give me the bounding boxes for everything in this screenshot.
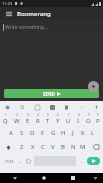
button[interactable]: Shift bbox=[0, 140, 16, 154]
staticText: D bbox=[30, 129, 35, 137]
staticText: N bbox=[71, 143, 76, 151]
staticText: Q bbox=[3, 117, 8, 125]
button[interactable]: V bbox=[48, 140, 58, 154]
staticText: F bbox=[41, 129, 45, 137]
button[interactable]: 1 bbox=[0, 112, 11, 126]
staticText: A bbox=[9, 129, 13, 137]
button[interactable]: Write something... bbox=[0, 20, 103, 34]
staticText: ?123 bbox=[5, 159, 14, 164]
button[interactable]: Hide keyboard bbox=[87, 173, 103, 183]
staticText: , bbox=[19, 158, 21, 165]
button[interactable]: Clipboard bbox=[62, 103, 70, 111]
staticText: E bbox=[26, 117, 30, 125]
staticText: J bbox=[72, 129, 74, 137]
button[interactable]: X bbox=[27, 140, 38, 154]
staticText: 1 bbox=[5, 113, 7, 117]
staticText: 11:23 bbox=[2, 1, 13, 6]
staticText: W bbox=[14, 117, 20, 125]
button[interactable]: Voice input bbox=[92, 103, 100, 111]
button[interactable]: C bbox=[38, 140, 48, 154]
button[interactable]: N bbox=[68, 140, 78, 154]
button[interactable]: Recent apps bbox=[58, 173, 87, 183]
button[interactable]: D bbox=[27, 126, 38, 140]
staticText: S bbox=[20, 129, 24, 137]
staticText: I bbox=[77, 117, 80, 125]
button[interactable]: L bbox=[88, 126, 98, 140]
staticText: 3 bbox=[27, 113, 29, 117]
staticText: M bbox=[80, 143, 86, 151]
button[interactable]: Comma bbox=[16, 156, 24, 166]
button[interactable]: F bbox=[38, 126, 48, 140]
button[interactable]: 4 bbox=[33, 112, 43, 126]
staticText: U bbox=[66, 117, 71, 125]
button[interactable]: G bbox=[48, 126, 58, 140]
staticText: 6 bbox=[57, 113, 59, 117]
button[interactable]: ?123 bbox=[2, 156, 16, 166]
staticText: P bbox=[96, 117, 100, 125]
staticText: 0 bbox=[97, 113, 99, 117]
staticText: Z bbox=[20, 143, 24, 151]
staticText: C bbox=[41, 143, 45, 151]
staticText: L bbox=[91, 129, 95, 137]
staticText: G bbox=[51, 129, 56, 137]
button[interactable]: 2 bbox=[11, 112, 22, 126]
button[interactable]: 5 bbox=[43, 112, 53, 126]
button[interactable]: More options bbox=[77, 103, 85, 111]
staticText: 8 bbox=[78, 113, 80, 117]
button[interactable]: Back bbox=[0, 173, 29, 183]
staticText: B bbox=[61, 143, 65, 151]
staticText: H bbox=[61, 129, 66, 137]
button[interactable]: H bbox=[58, 126, 68, 140]
staticText: 7 bbox=[68, 113, 70, 117]
button[interactable]: Search bbox=[18, 103, 26, 111]
staticText: 9 bbox=[88, 113, 90, 117]
staticText: . bbox=[81, 158, 83, 165]
staticText: X bbox=[31, 143, 35, 151]
button[interactable]: 6 bbox=[53, 112, 63, 126]
button[interactable]: 8 bbox=[73, 112, 83, 126]
button[interactable]: SEND bbox=[4, 89, 99, 98]
staticText: O bbox=[86, 117, 91, 125]
button[interactable]: Add bbox=[88, 81, 99, 92]
button[interactable]: 0 bbox=[93, 112, 103, 126]
staticText: SEND bbox=[43, 91, 55, 97]
button[interactable]: Stickers bbox=[33, 103, 41, 111]
button[interactable]: Period bbox=[77, 156, 86, 166]
button[interactable]: Open navigation menu bbox=[4, 9, 13, 18]
staticText: 2 bbox=[16, 113, 18, 117]
button[interactable]: Z bbox=[16, 140, 27, 154]
button[interactable]: Home bbox=[29, 173, 58, 183]
staticText: T bbox=[46, 117, 50, 125]
button[interactable]: M bbox=[78, 140, 88, 154]
button[interactable]: B bbox=[58, 140, 68, 154]
staticText: Y bbox=[56, 117, 60, 125]
staticText: V bbox=[51, 143, 55, 151]
button[interactable]: K bbox=[78, 126, 88, 140]
button[interactable]: A bbox=[5, 126, 16, 140]
staticText: Write something... bbox=[5, 24, 49, 31]
button[interactable]: 9 bbox=[83, 112, 93, 126]
button[interactable]: 7 bbox=[63, 112, 73, 126]
button[interactable]: Delete bbox=[88, 140, 103, 154]
staticText: 4 bbox=[37, 113, 39, 117]
button[interactable]: Enter bbox=[87, 157, 100, 165]
button[interactable]: Emoji bbox=[24, 156, 33, 166]
staticText: 5 bbox=[47, 113, 49, 117]
button[interactable]: 3 bbox=[22, 112, 33, 126]
staticText: R bbox=[36, 117, 40, 125]
staticText: Boomerang bbox=[17, 10, 51, 18]
button[interactable]: Google assistant bbox=[3, 103, 11, 111]
button[interactable]: J bbox=[68, 126, 78, 140]
button[interactable]: GIF bbox=[48, 103, 56, 111]
button[interactable]: S bbox=[16, 126, 27, 140]
staticText: K bbox=[81, 129, 85, 137]
